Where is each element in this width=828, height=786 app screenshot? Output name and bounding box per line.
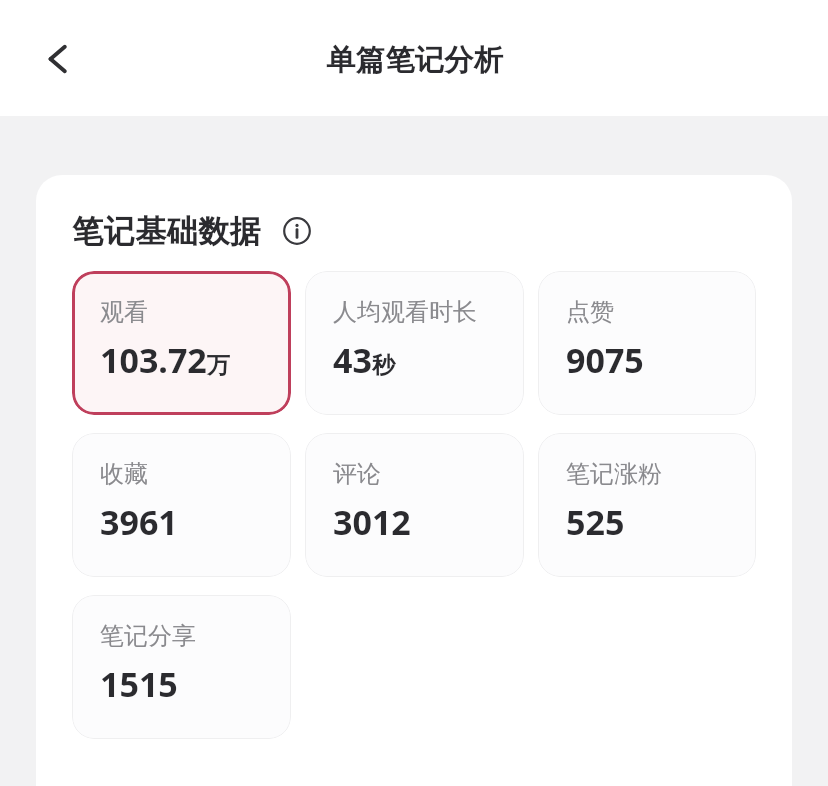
staticText: 1515 bbox=[100, 661, 178, 707]
staticText: 单篇笔记分析 bbox=[326, 42, 503, 79]
staticText: 9075 bbox=[566, 337, 644, 383]
staticText: 评论 bbox=[333, 459, 381, 489]
button[interactable]: Info bbox=[275, 209, 319, 253]
staticText: 点赞 bbox=[566, 297, 614, 327]
button[interactable]: 笔记涨粉 bbox=[538, 433, 756, 577]
button[interactable]: 观看 bbox=[72, 271, 291, 415]
button[interactable]: 点赞 bbox=[538, 271, 756, 415]
button[interactable]: 笔记分享 bbox=[72, 595, 291, 739]
staticText: 525 bbox=[566, 499, 625, 545]
staticText: 收藏 bbox=[100, 459, 148, 489]
staticText: 笔记分享 bbox=[100, 621, 196, 651]
staticText: 人均观看时长 bbox=[333, 297, 477, 327]
staticText: 103.72万 bbox=[100, 337, 230, 383]
staticText: 观看 bbox=[100, 297, 148, 327]
button[interactable]: 收藏 bbox=[72, 433, 291, 577]
staticText: 笔记涨粉 bbox=[566, 459, 662, 489]
staticText: 43秒 bbox=[333, 337, 395, 383]
button[interactable]: 人均观看时长 bbox=[305, 271, 524, 415]
button[interactable]: 评论 bbox=[305, 433, 524, 577]
staticText: 3961 bbox=[100, 499, 178, 545]
staticText: 3012 bbox=[333, 499, 411, 545]
button[interactable]: Back bbox=[22, 30, 94, 88]
staticText: 笔记基础数据 bbox=[72, 212, 261, 251]
